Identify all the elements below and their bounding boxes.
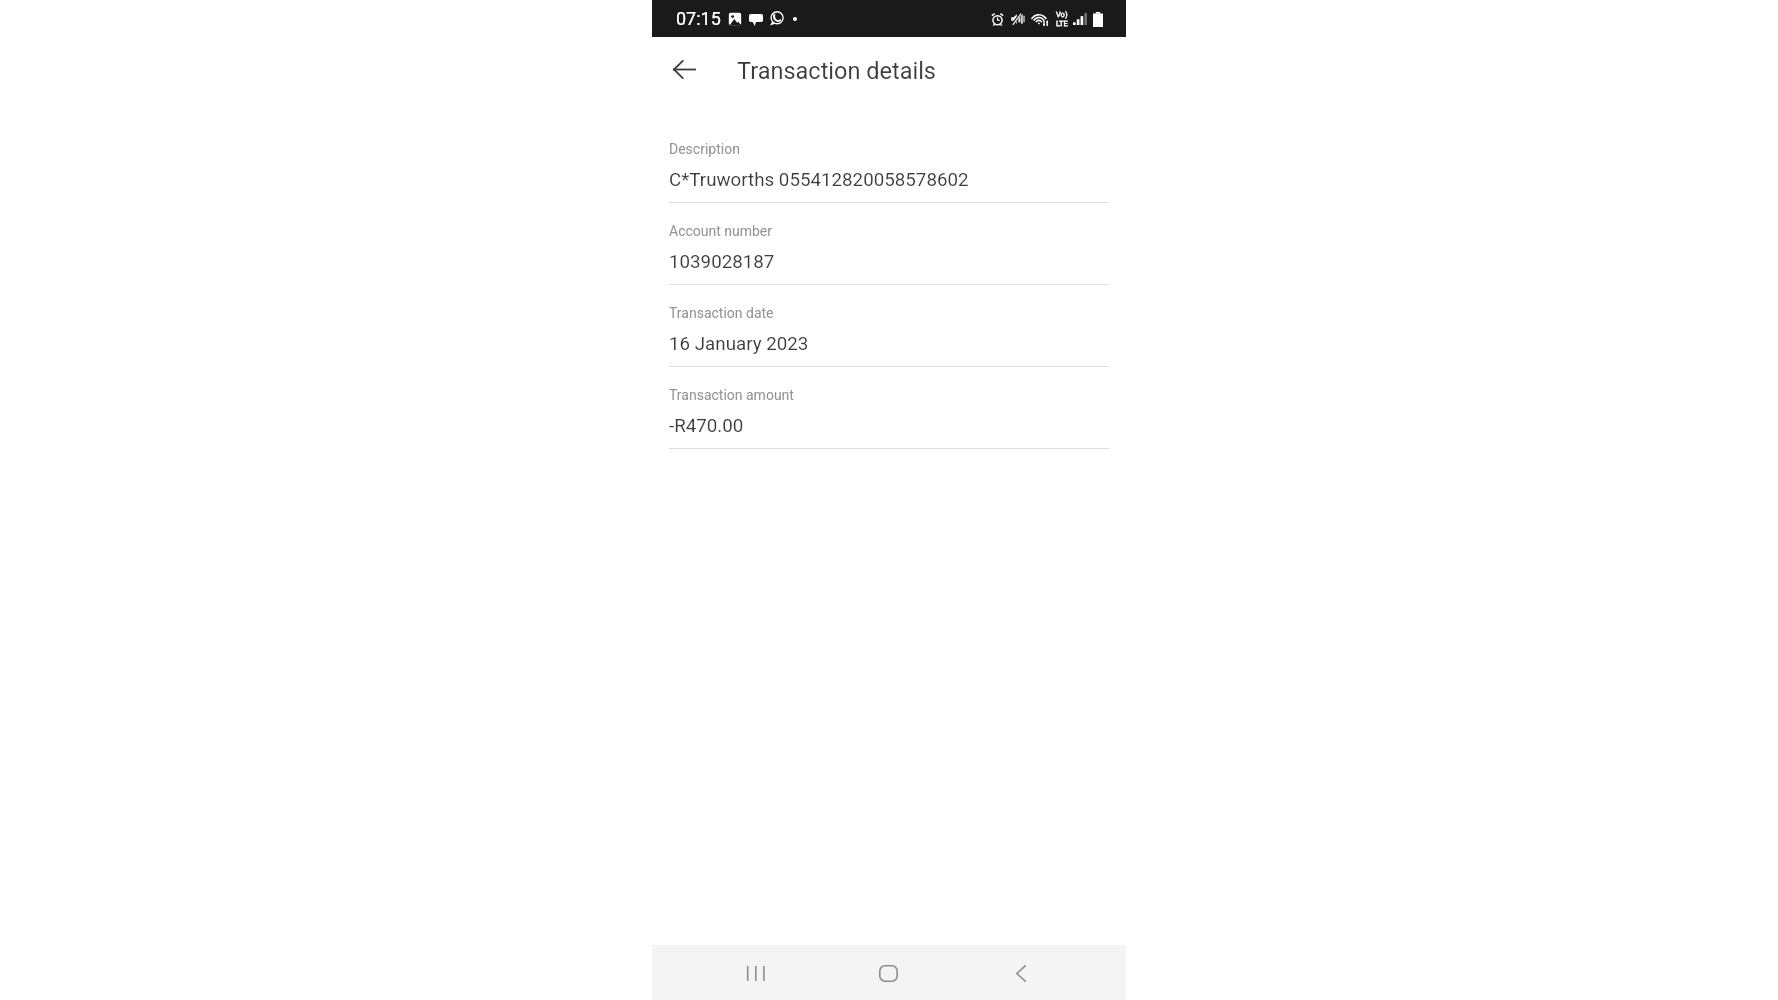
staticText: Transaction date [669,305,774,321]
staticText: 07:15 [676,8,721,29]
staticText: 1039028187 [669,251,775,273]
staticText: Description [669,141,740,157]
staticText: Account number [669,223,773,239]
staticText: Transaction amount [669,387,794,403]
button[interactable]: Back [660,45,708,93]
button[interactable]: Back [997,949,1045,997]
staticText: Vo) [1056,10,1068,19]
staticText: 16 January 2023 [669,333,809,355]
staticText: C*Truworths 055412820058578602 [669,169,969,191]
button[interactable]: Recents [731,949,779,997]
button[interactable]: Home [864,949,912,997]
staticText: -R470.00 [669,415,744,437]
staticText: Transaction details [737,57,936,85]
staticText: LTE [1056,19,1068,28]
